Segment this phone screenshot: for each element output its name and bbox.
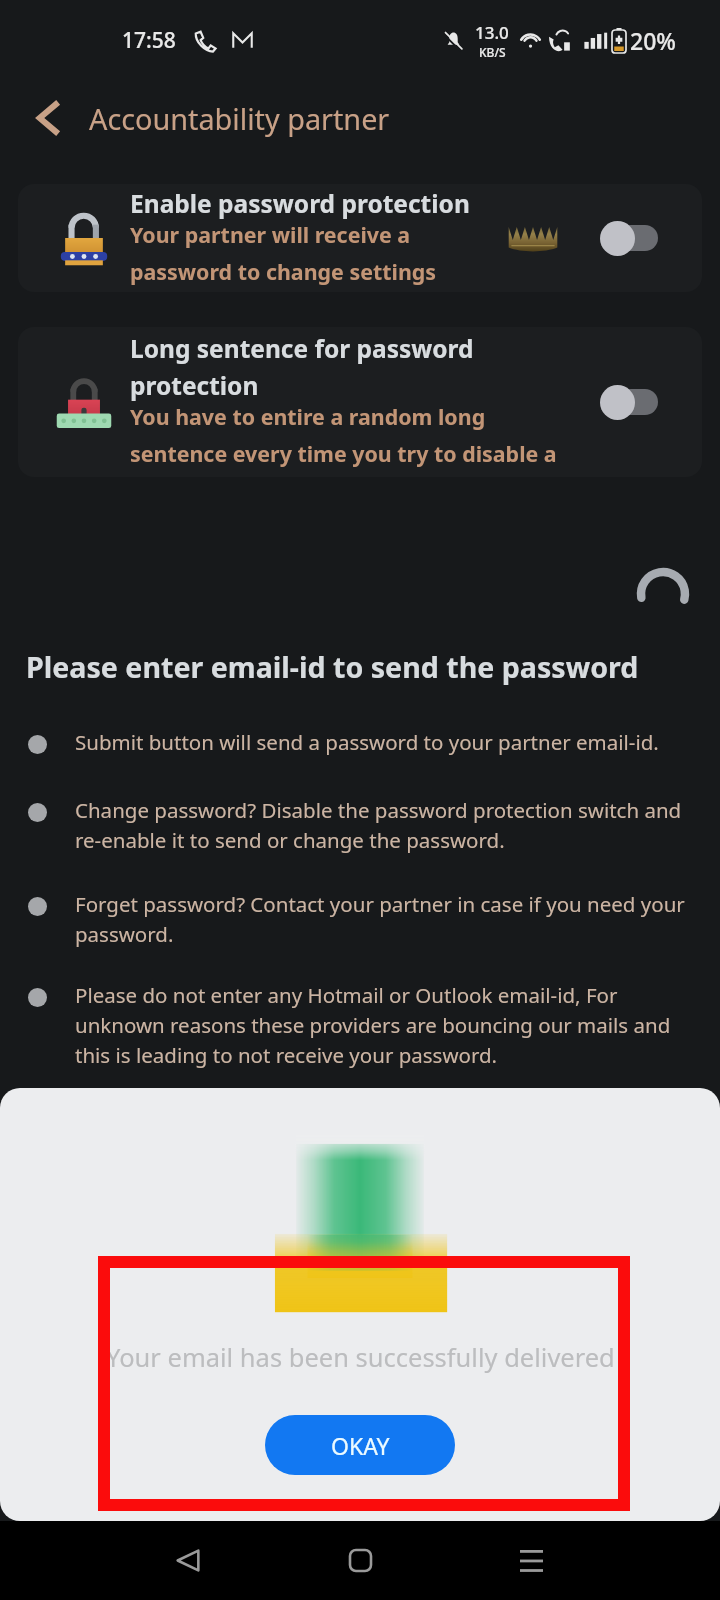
staticText: Forget password? Contact your partner in… xyxy=(75,890,694,948)
button[interactable]: Toggle password protection xyxy=(600,382,658,422)
staticText: OKAY xyxy=(331,1430,390,1461)
staticText: Please do not enter any Hotmail or Outlo… xyxy=(75,981,694,1069)
staticText: Your email has been successfully deliver… xyxy=(106,1340,615,1375)
staticText: Long sentence for password protection xyxy=(130,332,474,402)
staticText: You have to entire a random long sentenc… xyxy=(130,402,557,468)
staticText: 13.0 xyxy=(475,21,509,44)
button[interactable]: OKAY xyxy=(265,1415,455,1475)
button[interactable]: Toggle password protection xyxy=(600,218,658,258)
staticText: Submit button will send a password to yo… xyxy=(75,728,659,756)
staticText: Change password? Disable the password pr… xyxy=(75,796,694,854)
staticText: KB/S xyxy=(479,44,506,60)
button[interactable]: Recent apps xyxy=(495,1521,567,1600)
staticText: Enable password protection xyxy=(130,187,470,220)
staticText: Your partner will receive a password to … xyxy=(130,220,437,286)
button[interactable]: Long sentence for password protection xyxy=(18,327,702,477)
staticText: 17:58 xyxy=(122,26,176,55)
button[interactable]: Back xyxy=(17,87,79,149)
button[interactable]: Back xyxy=(152,1521,224,1600)
button[interactable]: Home xyxy=(324,1521,396,1600)
button[interactable]: Enable password protection xyxy=(18,184,702,292)
staticText: Please enter email-id to send the passwo… xyxy=(26,647,639,686)
staticText: 20% xyxy=(630,25,676,56)
staticText: Accountability partner xyxy=(89,99,390,138)
